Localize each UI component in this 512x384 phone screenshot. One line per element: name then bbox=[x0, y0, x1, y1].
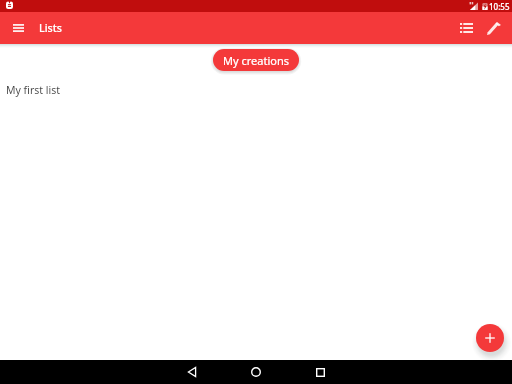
button[interactable]: List view bbox=[452, 12, 480, 44]
staticText: My first list bbox=[6, 83, 61, 97]
button[interactable]: Edit bbox=[480, 12, 508, 44]
button[interactable]: My creations bbox=[213, 49, 299, 71]
staticText: My creations bbox=[223, 53, 289, 68]
staticText: Lists bbox=[39, 21, 62, 35]
staticText: 10:55 bbox=[489, 1, 510, 12]
button[interactable]: Back bbox=[170, 360, 214, 384]
button[interactable]: Menu bbox=[2, 12, 34, 44]
button[interactable]: Home bbox=[234, 360, 278, 384]
button[interactable]: Recents bbox=[298, 360, 342, 384]
button[interactable]: My first list bbox=[0, 79, 512, 101]
button[interactable]: Add bbox=[476, 324, 504, 352]
